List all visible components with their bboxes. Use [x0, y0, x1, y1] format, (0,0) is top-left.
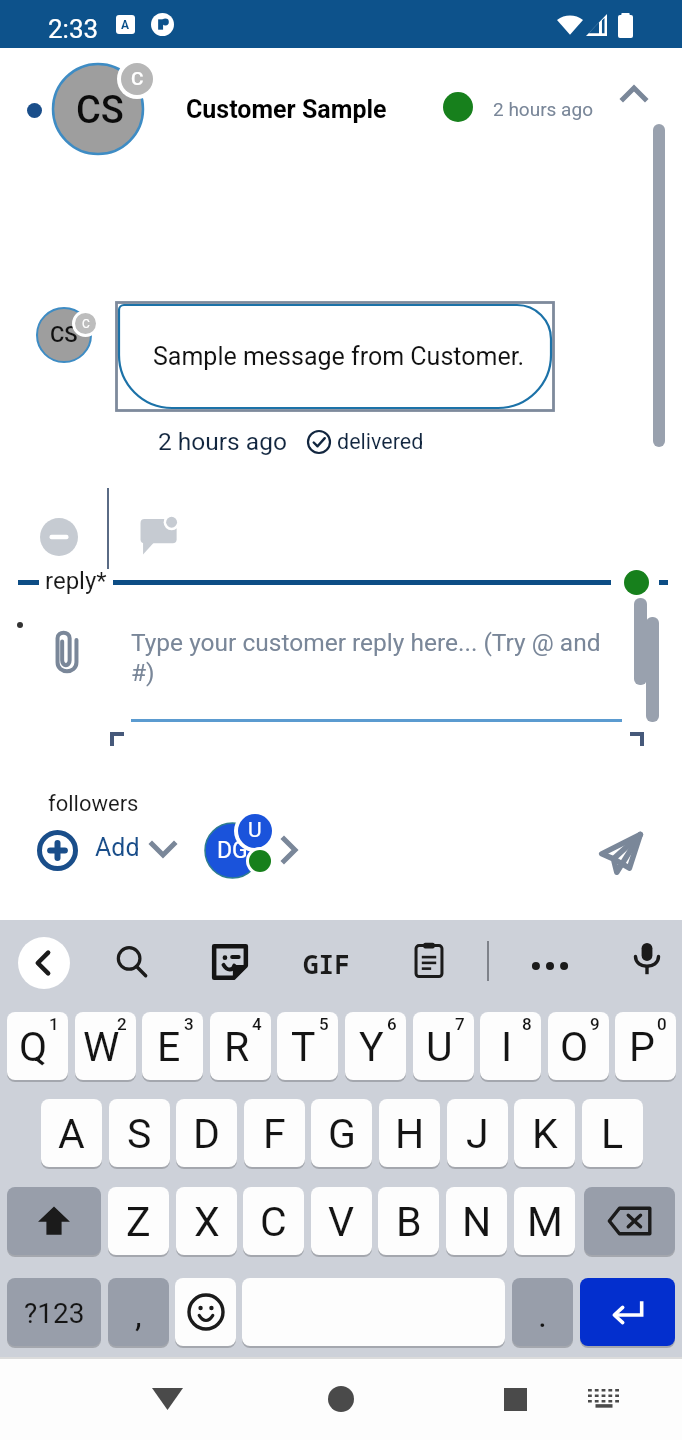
staticText: C	[260, 1198, 287, 1246]
button[interactable]: Switch keyboard	[577, 1371, 631, 1425]
button[interactable]: T	[277, 1012, 338, 1080]
button[interactable]: ?123	[7, 1278, 101, 1346]
button[interactable]: P	[615, 1012, 676, 1080]
staticText: A	[58, 1110, 85, 1158]
button[interactable]: Expand followers	[146, 832, 180, 866]
button[interactable]: Add follower	[37, 830, 78, 871]
button[interactable]: Recent apps	[488, 1372, 542, 1426]
button[interactable]: K	[514, 1099, 575, 1167]
button[interactable]: Internal note	[138, 513, 180, 555]
button[interactable]: R	[210, 1012, 271, 1080]
button[interactable]: Add	[95, 833, 140, 862]
staticText: 7	[455, 1014, 465, 1034]
button[interactable]: Voice input	[629, 940, 665, 976]
staticText: S	[127, 1110, 152, 1158]
button[interactable]: Hide keyboard	[140, 1372, 194, 1426]
button[interactable]	[27, 103, 42, 118]
staticText: V	[328, 1198, 355, 1246]
button[interactable]: C	[243, 1187, 304, 1255]
staticText: L	[601, 1110, 624, 1158]
button[interactable]: J	[447, 1099, 508, 1167]
button[interactable]: N	[446, 1187, 507, 1255]
button[interactable]: Z	[108, 1187, 169, 1255]
button[interactable]: F	[244, 1099, 305, 1167]
button[interactable]: Sample message from Customer.	[115, 301, 555, 412]
staticText: C	[131, 67, 144, 89]
button[interactable]	[242, 1278, 505, 1346]
button[interactable]: X	[176, 1187, 237, 1255]
button[interactable]	[584, 1187, 675, 1255]
staticText: T	[291, 1023, 316, 1071]
button[interactable]: O	[548, 1012, 609, 1080]
staticText: B	[396, 1198, 422, 1246]
button[interactable]: Type your customer reply here... (Try @ …	[131, 628, 623, 687]
button[interactable]: Stickers	[212, 944, 248, 980]
button[interactable]: L	[582, 1099, 643, 1167]
staticText: 6	[387, 1014, 397, 1034]
staticText: 2	[117, 1014, 127, 1034]
button[interactable]: G	[311, 1099, 372, 1167]
staticText: U	[426, 1023, 453, 1071]
button[interactable]: Remove	[40, 518, 78, 556]
button[interactable]: I	[480, 1012, 541, 1080]
button[interactable]: Q	[7, 1012, 68, 1080]
staticText: W	[83, 1023, 120, 1071]
staticText: O	[560, 1023, 589, 1071]
staticText: R	[224, 1023, 250, 1071]
button[interactable]: A	[41, 1099, 102, 1167]
button[interactable]: Search	[114, 944, 150, 980]
staticText: Z	[126, 1198, 151, 1246]
button[interactable]: E	[142, 1012, 203, 1080]
staticText: CS	[50, 322, 78, 348]
staticText: E	[157, 1023, 181, 1071]
staticText: I	[501, 1023, 513, 1071]
button[interactable]	[7, 1187, 101, 1255]
staticText: reply*	[45, 567, 107, 595]
staticText: .	[538, 1295, 547, 1335]
button[interactable]: GIF	[303, 946, 350, 981]
staticText: 3	[184, 1014, 194, 1034]
button[interactable]: Y	[345, 1012, 406, 1080]
button[interactable]: H	[379, 1099, 440, 1167]
button[interactable]: Show followers	[273, 833, 307, 867]
staticText: ?123	[24, 1297, 85, 1330]
button[interactable]: V	[311, 1187, 372, 1255]
staticText: 1	[49, 1014, 59, 1034]
button[interactable]: Clipboard	[411, 942, 447, 978]
staticText: Sample message from Customer.	[153, 342, 525, 371]
button[interactable]: Customer Sample	[186, 95, 387, 124]
button[interactable]	[580, 1278, 675, 1346]
staticText: X	[194, 1198, 220, 1246]
button[interactable]: U	[413, 1012, 474, 1080]
staticText: delivered	[337, 429, 424, 454]
button[interactable]: .	[512, 1278, 573, 1346]
staticText: Q	[19, 1023, 48, 1071]
button[interactable]: ,	[108, 1278, 169, 1346]
staticText: DG	[217, 837, 248, 864]
staticText: followers	[48, 791, 139, 817]
staticText: C	[82, 317, 90, 331]
staticText: K	[532, 1110, 558, 1158]
button[interactable]: Back	[18, 937, 70, 989]
button[interactable]: W	[75, 1012, 136, 1080]
staticText: 2 hours ago	[158, 427, 287, 456]
staticText: 2:33	[48, 14, 99, 44]
button[interactable]: Customer avatar	[52, 63, 144, 155]
button[interactable]: DG	[204, 822, 261, 879]
button[interactable]	[175, 1278, 236, 1346]
button[interactable]: B	[378, 1187, 439, 1255]
button[interactable]: Home	[314, 1372, 368, 1426]
button[interactable]: Attach file	[56, 630, 78, 676]
button[interactable]: S	[109, 1099, 170, 1167]
staticText: P	[629, 1023, 655, 1071]
button[interactable]: Collapse	[610, 72, 658, 120]
staticText: 0	[657, 1014, 667, 1034]
button[interactable]: Send	[600, 832, 642, 874]
staticText: 9	[590, 1014, 600, 1034]
button[interactable]: M	[514, 1187, 575, 1255]
staticText: 8	[522, 1014, 532, 1034]
button[interactable]: D	[176, 1099, 237, 1167]
button[interactable]: More options	[528, 944, 572, 988]
staticText: Y	[359, 1023, 384, 1071]
staticText: A	[121, 18, 130, 32]
